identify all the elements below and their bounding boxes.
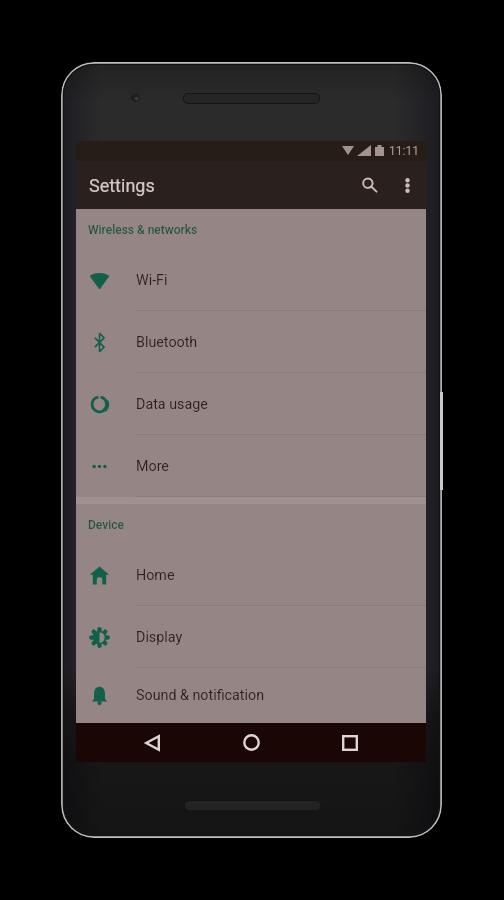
staticText: Settings: [89, 175, 155, 196]
button[interactable]: More: [76, 435, 426, 497]
staticText: Bluetooth: [136, 334, 198, 351]
staticText: Wi-Fi: [136, 272, 168, 289]
button[interactable]: Home: [76, 544, 426, 606]
button[interactable]: Display: [76, 606, 426, 668]
button[interactable]: Sound & notification: [76, 668, 426, 723]
button[interactable]: Data usage: [76, 373, 426, 435]
staticText: Data usage: [136, 396, 208, 413]
button[interactable]: Search: [350, 161, 390, 209]
staticText: More: [136, 458, 169, 475]
button[interactable]: Back: [122, 723, 182, 762]
button[interactable]: Recent apps: [320, 723, 380, 762]
button[interactable]: More options: [390, 161, 424, 209]
staticText: Device: [88, 518, 124, 532]
staticText: 11:11: [389, 144, 419, 158]
staticText: Sound & notification: [136, 687, 265, 704]
staticText: Display: [136, 629, 183, 646]
button[interactable]: Home: [221, 723, 281, 762]
button[interactable]: Bluetooth: [76, 311, 426, 373]
staticText: Home: [136, 567, 175, 584]
staticText: Wireless & networks: [88, 223, 198, 237]
button[interactable]: Wi-Fi: [76, 249, 426, 311]
